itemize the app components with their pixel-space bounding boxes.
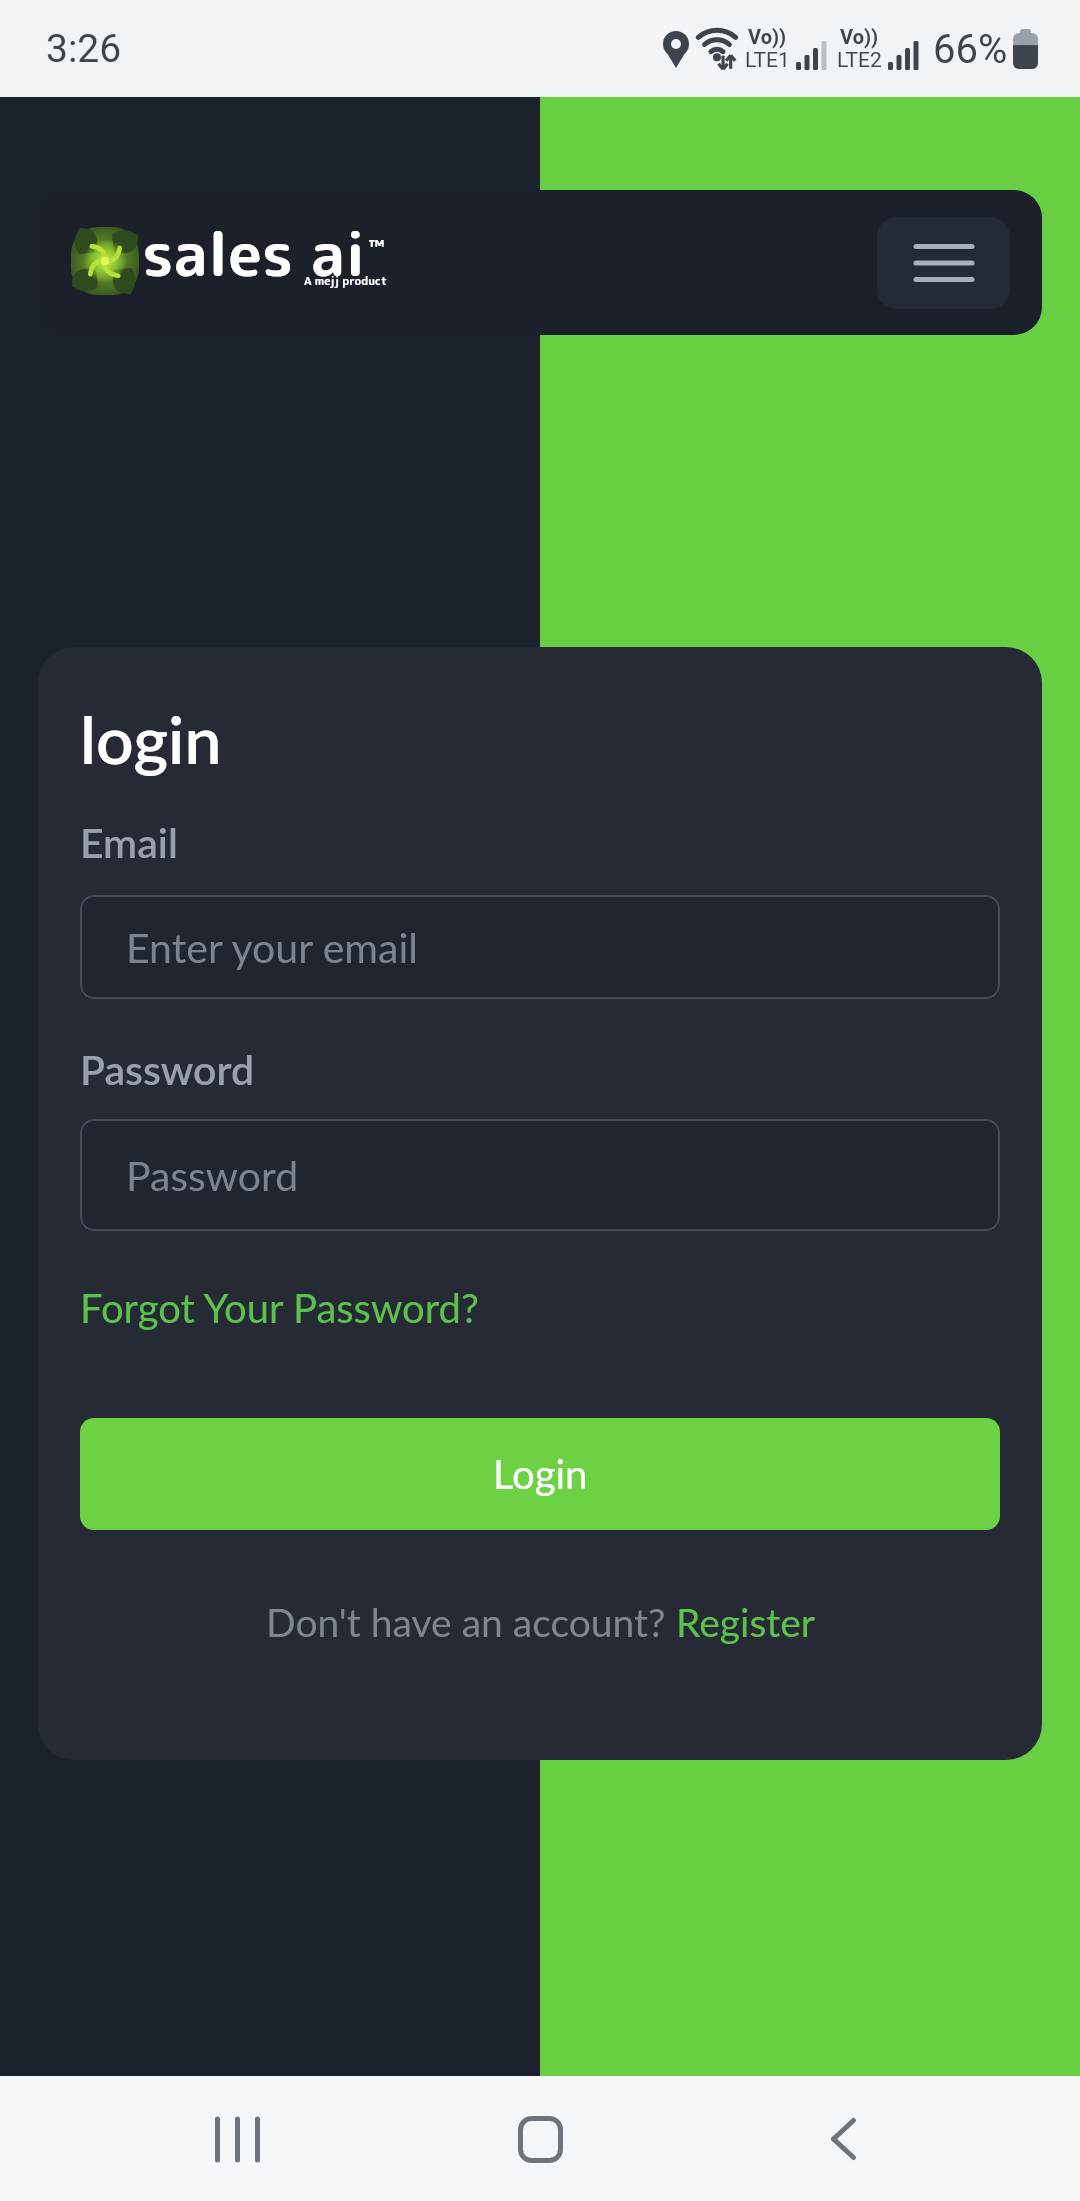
button[interactable] [495,2094,585,2184]
staticText: Vo)) [748,25,787,48]
staticText: Password [126,1151,299,1200]
staticText: 3:26 [46,26,122,72]
staticText: Vo)) [840,25,879,48]
button[interactable]: Password [80,1119,1000,1231]
staticText: A mejj product [304,273,387,289]
staticText: login [80,699,222,778]
button[interactable]: Forgot Your Password? [80,1284,479,1332]
button[interactable] [192,2094,282,2184]
staticText: Login [493,1450,588,1498]
staticText: LTE1 [745,48,790,73]
button[interactable]: Login [80,1418,1000,1530]
staticText: Email [80,818,178,867]
staticText: ™ [368,234,385,260]
button[interactable]: Enter your email [80,895,1000,999]
button[interactable] [798,2094,888,2184]
staticText: Password [80,1045,255,1094]
staticText: sales ai [142,210,366,295]
staticText: 66% [933,26,1008,73]
button[interactable] [877,217,1010,309]
button[interactable]: Register [676,1599,815,1646]
staticText: LTE2 [837,48,882,73]
staticText: Don't have an account? [266,1599,676,1646]
staticText: Enter your email [126,923,418,972]
